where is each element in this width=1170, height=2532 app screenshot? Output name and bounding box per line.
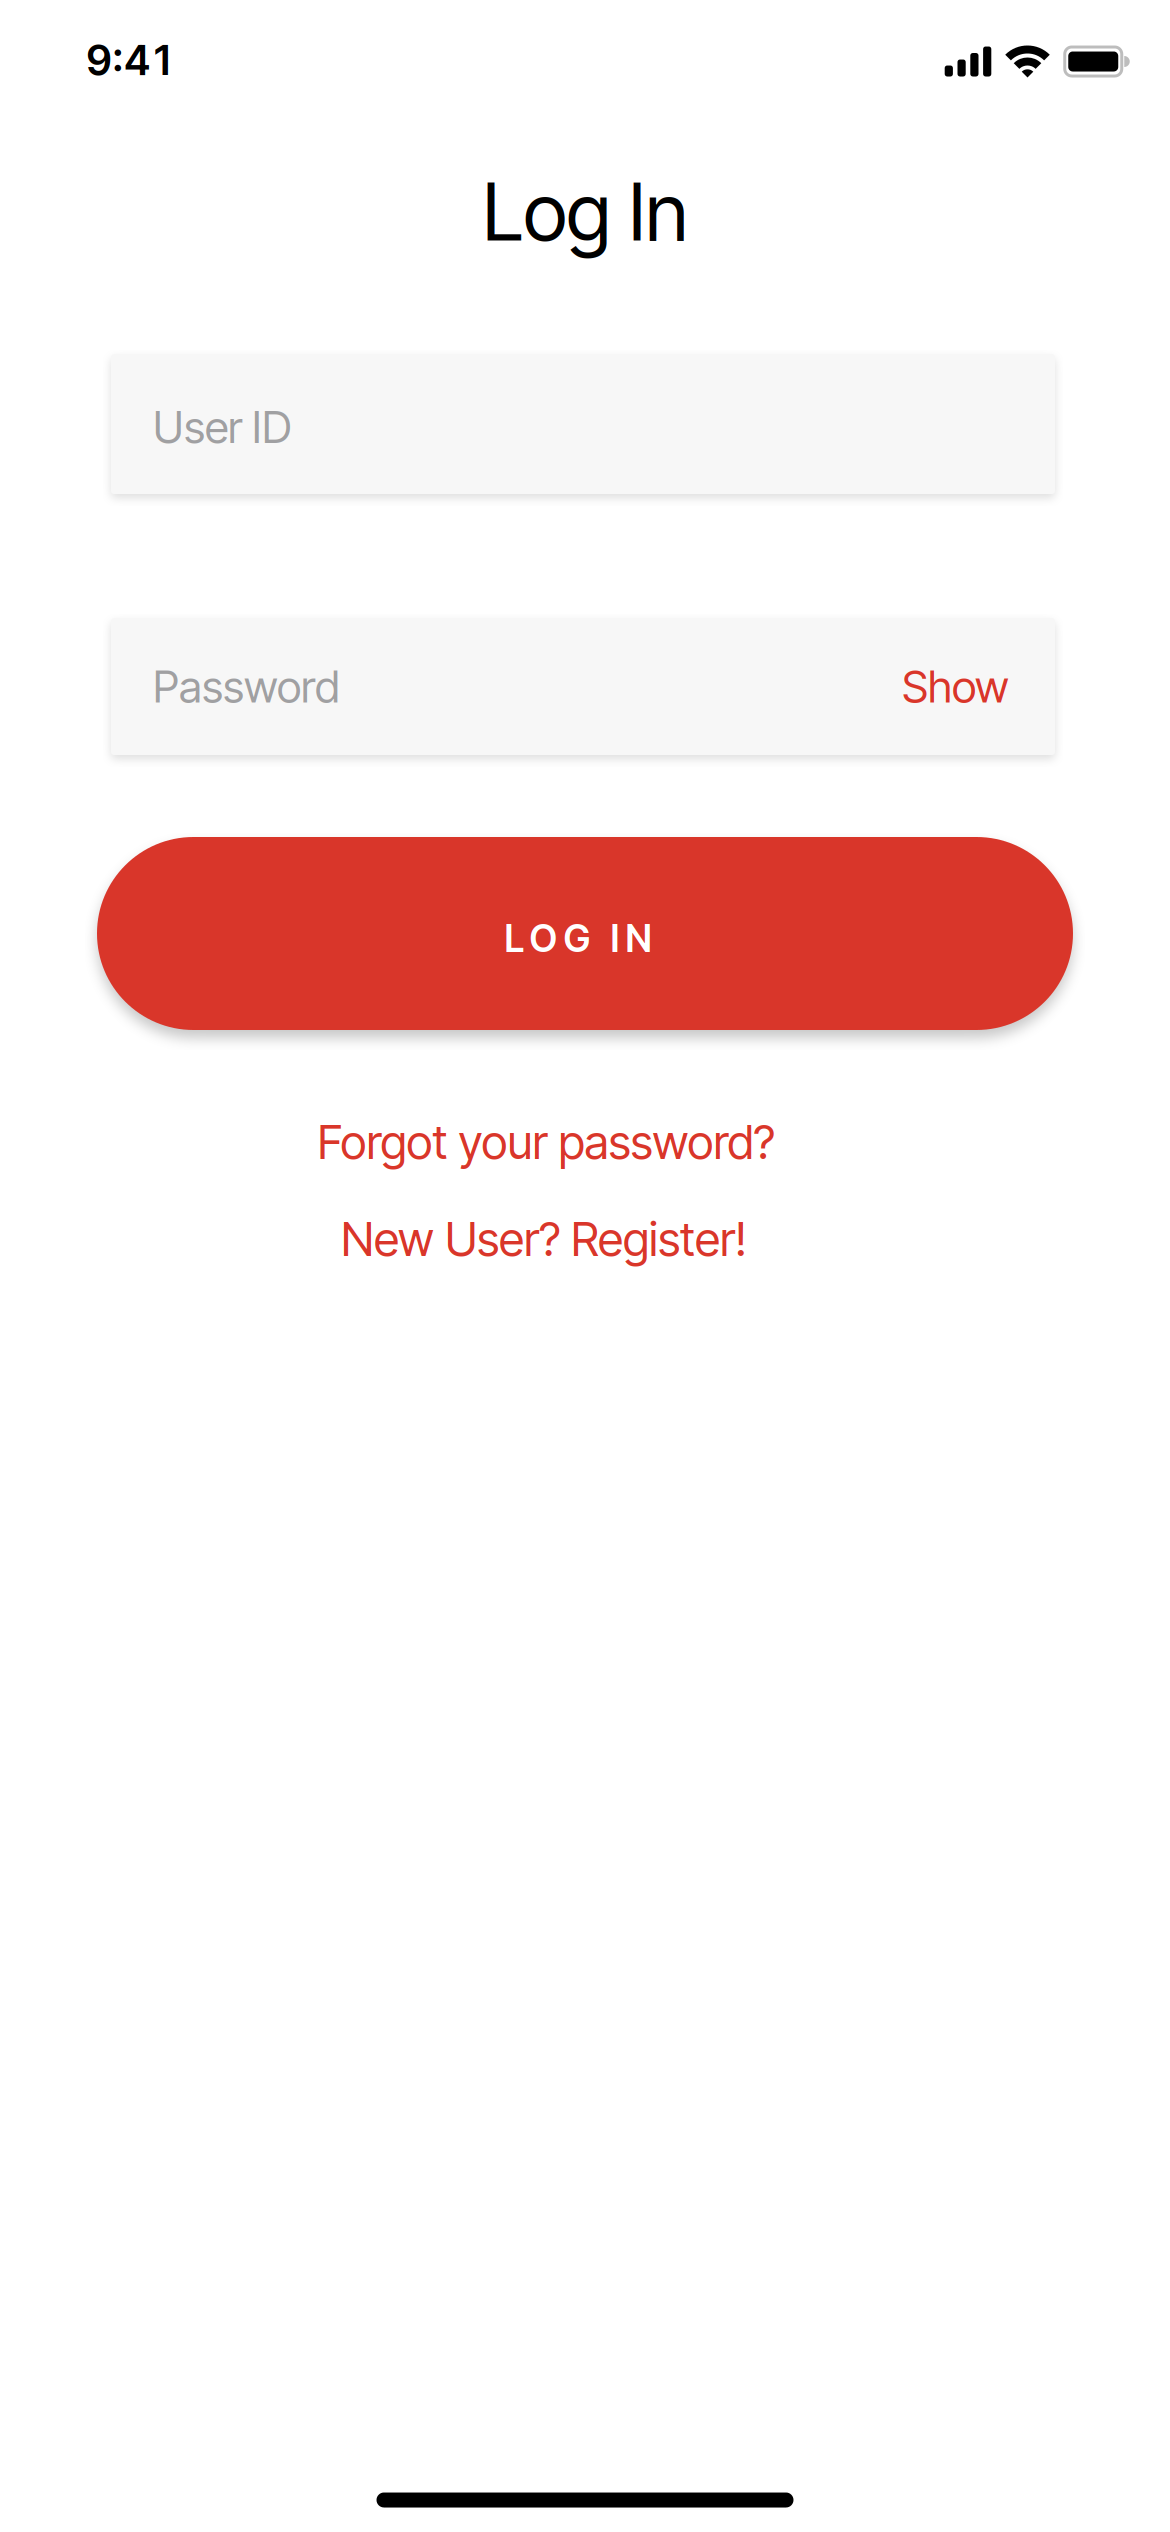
staticText: Password bbox=[153, 660, 340, 712]
button[interactable]: New User? Register! bbox=[341, 1211, 747, 1267]
staticText: New User? Register! bbox=[341, 1211, 747, 1267]
staticText: User ID bbox=[153, 401, 292, 453]
button[interactable]: LOG IN bbox=[97, 837, 1073, 1030]
staticText: LOG IN bbox=[504, 916, 651, 960]
button[interactable]: Forgot your password? bbox=[317, 1114, 774, 1170]
staticText: 9:41 bbox=[86, 36, 176, 84]
button[interactable]: User ID bbox=[111, 354, 1055, 494]
staticText: Show bbox=[902, 660, 1009, 712]
button[interactable]: Password bbox=[111, 618, 1055, 755]
staticText: Forgot your password? bbox=[317, 1114, 774, 1170]
button[interactable]: Show bbox=[902, 660, 1009, 712]
staticText: Log In bbox=[482, 166, 687, 258]
